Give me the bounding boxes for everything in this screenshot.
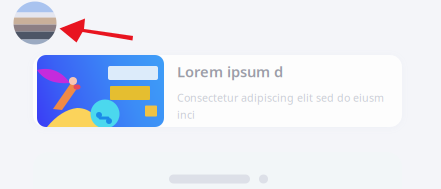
staticText: inci [177, 107, 195, 122]
staticText: Consectetur adipiscing elit sed do eiusm [177, 90, 384, 105]
button[interactable]: Profile [13, 1, 56, 44]
staticText: Lorem ipsum d [177, 62, 283, 81]
